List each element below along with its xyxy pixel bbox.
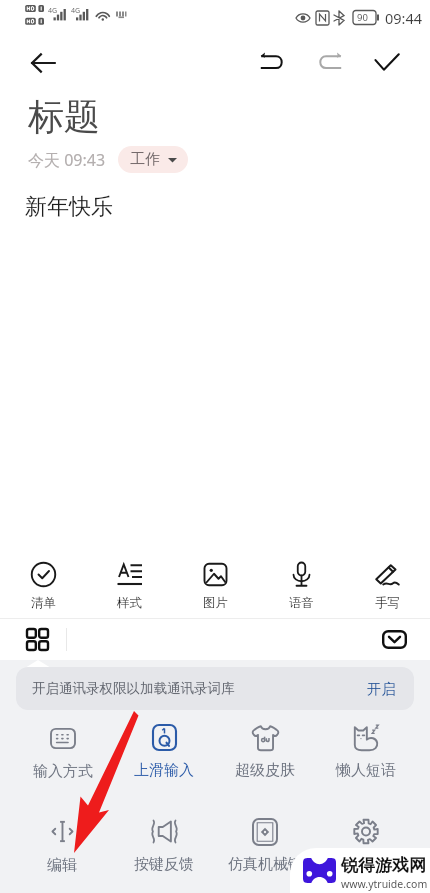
staticText: 09:44: [385, 8, 423, 28]
button[interactable]: 上滑输入: [114, 714, 214, 781]
button[interactable]: Collapse keyboard: [374, 619, 414, 660]
staticText: 手写: [375, 595, 400, 611]
button[interactable]: 超级皮肤: [215, 715, 315, 781]
staticText: 超级皮肤: [235, 761, 295, 780]
staticText: www.ytruide.com: [341, 877, 428, 891]
staticText: 输入方式: [33, 762, 93, 781]
button[interactable]: 手写: [347, 548, 427, 612]
staticText: 上滑输入: [134, 761, 194, 780]
staticText: 语音: [289, 595, 314, 611]
staticText: 开启通讯录权限以加载通讯录词库: [32, 680, 235, 697]
button[interactable]: Done: [365, 38, 409, 82]
staticText: 样式: [117, 595, 142, 611]
staticText: 锐得游戏网: [341, 855, 426, 876]
button[interactable]: 图片: [175, 548, 255, 612]
button[interactable]: 开启通讯录权限以加载通讯录词库: [16, 667, 414, 710]
button[interactable]: 按键反馈: [114, 809, 214, 875]
button[interactable]: 懒人短语: [316, 714, 416, 781]
staticText: 仿真机械键: [228, 855, 303, 874]
staticText: 今天 09:43: [28, 149, 106, 171]
button[interactable]: Back: [22, 42, 64, 84]
button[interactable]: [316, 809, 416, 875]
staticText: 编辑: [47, 856, 77, 875]
button[interactable]: Redo: [308, 38, 352, 82]
button[interactable]: 工作: [118, 146, 188, 173]
staticText: 新年快乐: [25, 193, 113, 221]
staticText: 标题: [28, 94, 100, 139]
button[interactable]: 清单: [3, 548, 83, 612]
staticText: 懒人短语: [336, 761, 396, 780]
button[interactable]: 输入方式: [13, 717, 113, 782]
button[interactable]: 仿真机械键: [215, 808, 315, 875]
button[interactable]: 编辑: [12, 810, 112, 876]
button[interactable]: 样式: [89, 548, 169, 612]
button[interactable]: 语音: [261, 548, 341, 612]
staticText: 90: [357, 11, 368, 24]
button[interactable]: Undo: [250, 38, 294, 82]
staticText: 工作: [130, 150, 160, 169]
staticText: 清单: [31, 595, 56, 611]
staticText: 开启: [367, 680, 396, 698]
staticText: 按键反馈: [134, 855, 194, 874]
staticText: 4G: [48, 6, 58, 16]
button[interactable]: Keyboard menu: [8, 619, 66, 660]
staticText: 图片: [203, 595, 228, 611]
staticText: 4G: [71, 6, 81, 16]
